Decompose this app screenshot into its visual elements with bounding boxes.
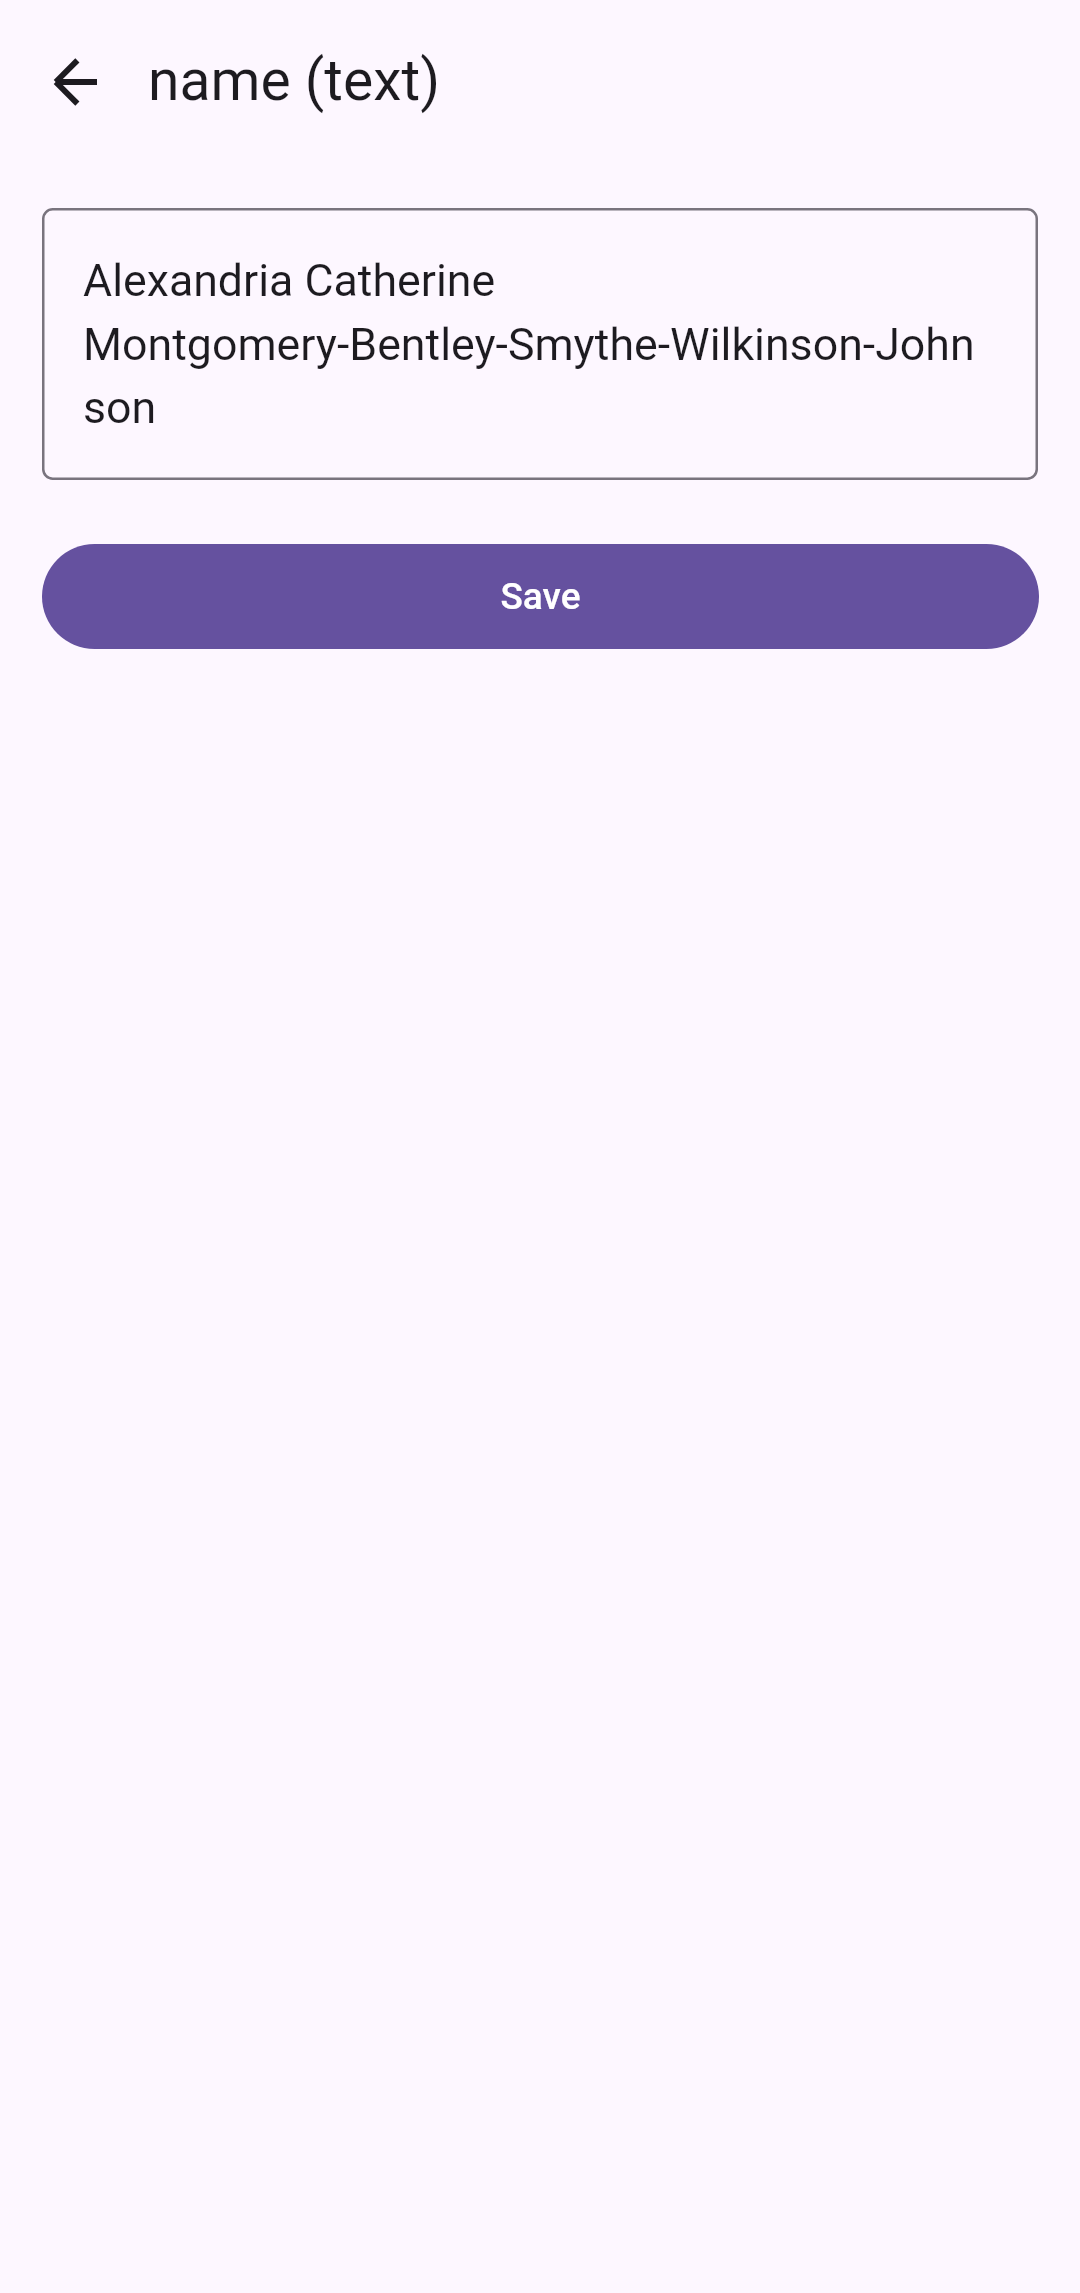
staticText: name (text) (148, 47, 440, 114)
button[interactable]: Save (42, 544, 1039, 649)
button[interactable]: Navigate up (26, 34, 122, 130)
button[interactable]: Alexandria Catherine Montgomery-Bentley-… (42, 208, 1038, 480)
staticText: Save (500, 575, 581, 618)
staticText: Alexandria Catherine Montgomery-Bentley-… (83, 255, 975, 434)
